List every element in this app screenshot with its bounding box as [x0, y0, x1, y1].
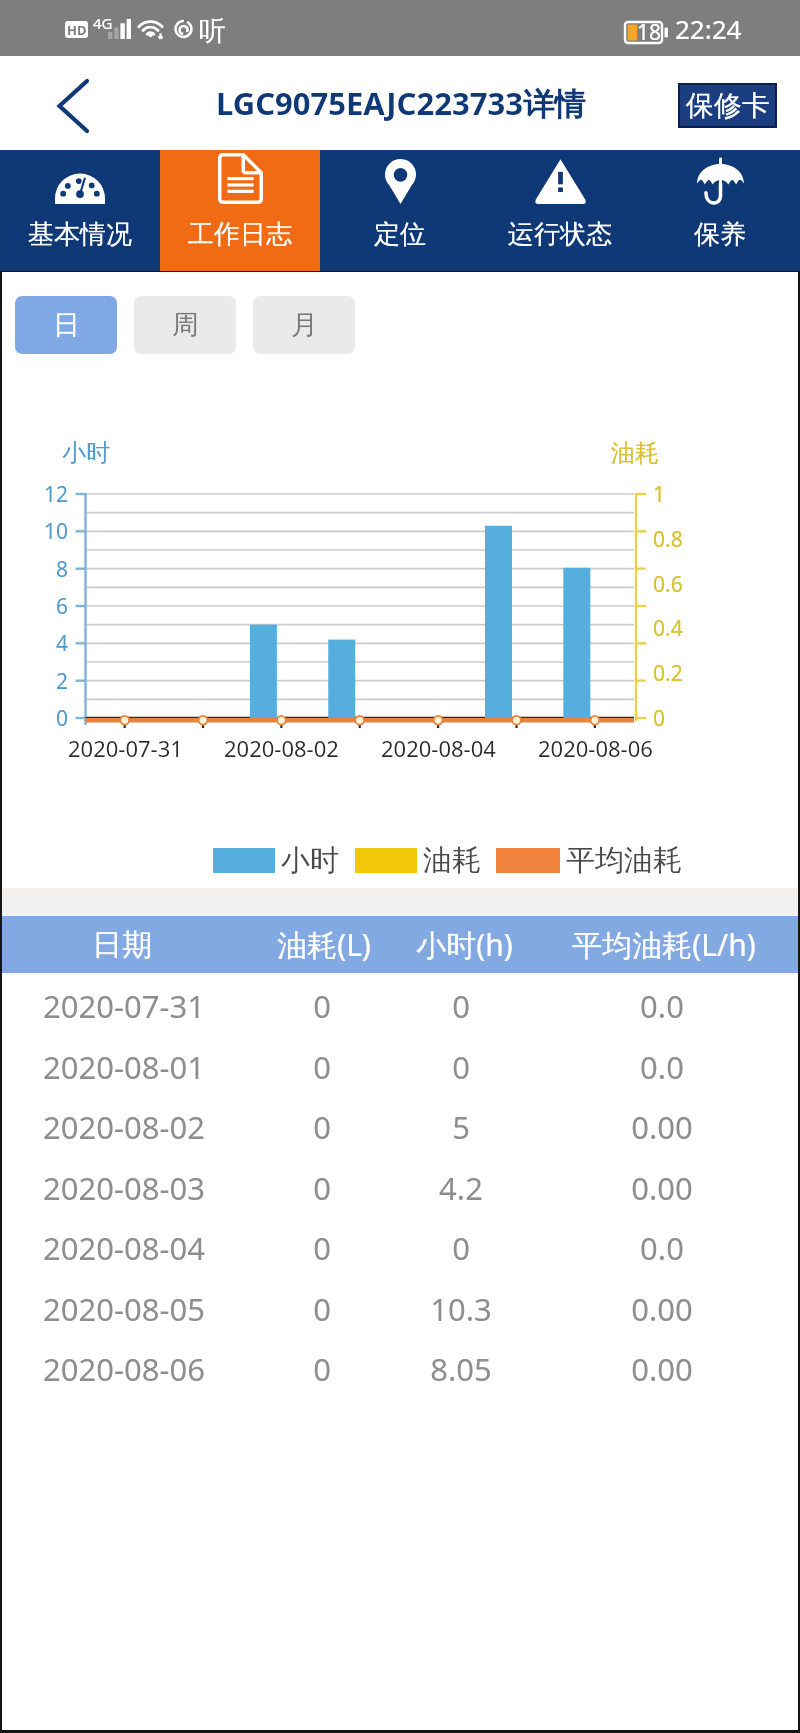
staticText: 0	[313, 1348, 331, 1390]
button[interactable]: 2020-08-05	[0, 1279, 800, 1339]
staticText: 平均油耗(L/h)	[572, 924, 756, 965]
staticText: 12	[44, 480, 69, 509]
staticText: 0.00	[631, 1348, 693, 1390]
staticText: 0	[313, 1227, 331, 1269]
staticText: 0	[313, 1167, 331, 1209]
staticText: 0	[313, 1288, 331, 1330]
staticText: 0.0	[640, 1046, 684, 1088]
staticText: 2020-08-06	[538, 733, 653, 763]
staticText: 听	[199, 14, 226, 48]
staticText: 22:24	[675, 11, 742, 46]
staticText: 2020-08-05	[43, 1288, 205, 1330]
staticText: 0	[56, 704, 69, 733]
staticText: 6	[56, 592, 69, 621]
staticText: 工作日志	[188, 218, 292, 251]
button[interactable]: Back	[56, 75, 112, 131]
staticText: 2020-07-31	[68, 733, 183, 763]
staticText: 18	[637, 18, 662, 47]
button[interactable]: 保修卡	[678, 83, 777, 128]
staticText: 小时	[281, 842, 339, 878]
staticText: 油耗	[423, 842, 481, 878]
staticText: 0	[313, 1106, 331, 1148]
staticText: 0.0	[640, 1227, 684, 1269]
button[interactable]: 2020-08-01	[0, 1037, 800, 1097]
staticText: 0.00	[631, 1106, 693, 1148]
staticText: 2020-08-02	[224, 733, 339, 763]
staticText: HD	[67, 21, 87, 38]
button[interactable]: 2020-08-03	[0, 1158, 800, 1218]
button[interactable]: 2020-08-02	[0, 1097, 800, 1157]
staticText: 日期	[92, 926, 152, 964]
button[interactable]: 定位	[320, 150, 480, 271]
staticText: 定位	[374, 218, 426, 251]
staticText: 0	[452, 985, 470, 1027]
staticText: 5	[452, 1106, 470, 1148]
staticText: 0.00	[631, 1288, 693, 1330]
button[interactable]: 基本情况	[0, 150, 160, 271]
staticText: 2020-07-31	[43, 985, 205, 1027]
staticText: 8.05	[430, 1348, 492, 1390]
staticText: 0	[452, 1046, 470, 1088]
staticText: 小时(h)	[416, 924, 513, 965]
staticText: 月	[291, 308, 318, 342]
staticText: LGC9075EAJC223733详情	[216, 82, 585, 124]
staticText: 0	[313, 985, 331, 1027]
button[interactable]: 工作日志	[160, 150, 320, 271]
staticText: 2020-08-06	[43, 1348, 205, 1390]
button[interactable]: 2020-08-06	[0, 1339, 800, 1399]
staticText: 4	[56, 629, 69, 658]
button[interactable]: 2020-07-31	[0, 976, 800, 1036]
staticText: 运行状态	[508, 218, 612, 251]
staticText: 0.00	[631, 1167, 693, 1209]
staticText: 10.3	[430, 1288, 492, 1330]
staticText: 0	[653, 704, 666, 733]
staticText: 10	[44, 517, 69, 546]
staticText: 油耗	[611, 438, 659, 468]
staticText: 2	[56, 667, 69, 696]
staticText: 保养	[694, 218, 746, 251]
staticText: 基本情况	[28, 218, 132, 251]
staticText: 0.0	[640, 985, 684, 1027]
button[interactable]: 保养	[640, 150, 800, 271]
staticText: 0.8	[653, 525, 683, 554]
staticText: 0	[313, 1046, 331, 1088]
staticText: 2020-08-01	[43, 1046, 205, 1088]
staticText: 0.4	[653, 614, 683, 643]
button[interactable]: 日	[15, 296, 117, 354]
staticText: 周	[172, 308, 199, 342]
button[interactable]: 月	[253, 296, 355, 354]
staticText: 2020-08-04	[381, 733, 496, 763]
staticText: 2020-08-04	[43, 1227, 205, 1269]
staticText: 8	[56, 555, 69, 584]
staticText: 日	[53, 308, 80, 342]
staticText: 0	[452, 1227, 470, 1269]
staticText: 2020-08-03	[43, 1167, 205, 1209]
staticText: 保修卡	[686, 88, 770, 123]
staticText: 4G	[93, 13, 113, 33]
button[interactable]: 2020-08-04	[0, 1218, 800, 1278]
staticText: 0.6	[653, 570, 683, 599]
button[interactable]: 运行状态	[480, 150, 640, 271]
staticText: 平均油耗	[566, 842, 682, 878]
staticText: 油耗(L)	[277, 924, 371, 965]
staticText: 4.2	[439, 1167, 483, 1209]
button[interactable]: 周	[134, 296, 236, 354]
staticText: 小时	[62, 438, 110, 468]
staticText: 2020-08-02	[43, 1106, 205, 1148]
staticText: 0.2	[653, 659, 683, 688]
staticText: 1	[653, 480, 666, 509]
